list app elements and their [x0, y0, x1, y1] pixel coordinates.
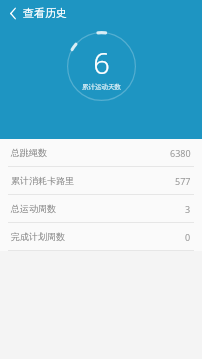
staticText: 累计消耗卡路里 [11, 175, 74, 186]
staticText: 3 [185, 203, 191, 215]
staticText: 查看历史 [23, 6, 67, 20]
staticText: 完成计划周数 [11, 231, 65, 242]
button[interactable]: Back [6, 3, 70, 23]
staticText: 累计运动天数 [82, 83, 121, 91]
staticText: 总跳绳数 [11, 147, 47, 158]
staticText: 577 [175, 175, 191, 187]
button[interactable]: 总跳绳数 [0, 139, 202, 166]
button[interactable]: 完成计划周数 [0, 223, 202, 250]
button[interactable]: 累计消耗卡路里 [0, 167, 202, 194]
staticText: 6380 [170, 147, 191, 159]
staticText: 0 [185, 231, 191, 243]
staticText: 总运动周数 [11, 203, 56, 214]
button[interactable]: 总运动周数 [0, 195, 202, 222]
staticText: 6 [93, 43, 110, 82]
